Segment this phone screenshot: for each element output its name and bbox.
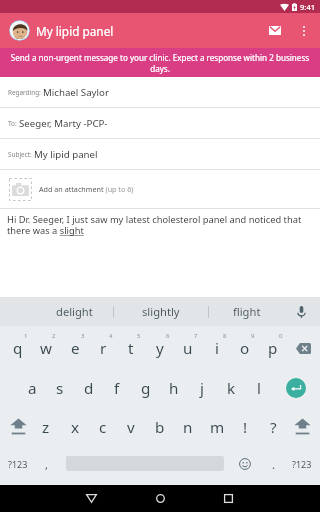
staticText: 8 <box>223 332 227 340</box>
staticText: 9 <box>251 332 255 340</box>
staticText: i <box>215 338 219 359</box>
button[interactable]: e <box>61 328 89 368</box>
staticText: delight <box>56 304 93 319</box>
button[interactable]: slightly <box>117 297 205 326</box>
staticText: ?123 <box>8 458 28 470</box>
button[interactable]: . <box>261 445 285 483</box>
button[interactable]: p <box>259 328 287 368</box>
staticText: q <box>13 338 23 359</box>
button[interactable]: Shift <box>3 407 33 447</box>
button[interactable]: a <box>18 368 46 408</box>
button[interactable]: b <box>146 407 174 447</box>
staticText: My lipid panel <box>36 23 114 39</box>
staticText: Michael Saylor <box>43 86 109 99</box>
staticText: o <box>240 338 250 359</box>
button[interactable]: m <box>203 407 231 447</box>
staticText: slightly <box>142 304 180 319</box>
button[interactable]: h <box>160 368 188 408</box>
button[interactable]: q <box>4 328 32 368</box>
button[interactable]: Back <box>74 485 108 512</box>
button[interactable]: Add an attachment (up to 6) <box>0 170 320 209</box>
staticText: 1 <box>24 332 28 340</box>
button[interactable]: Subject: <box>0 139 320 170</box>
button[interactable]: To: <box>0 108 320 139</box>
staticText: Add an attachment (up to 6) <box>39 184 134 194</box>
staticText: u <box>183 338 193 359</box>
button[interactable]: ?123 <box>1 445 35 483</box>
button[interactable]: ?123 <box>285 445 319 483</box>
button[interactable]: w <box>32 328 60 368</box>
button[interactable]: t <box>117 328 145 368</box>
button[interactable]: n <box>174 407 202 447</box>
button[interactable]: j <box>188 368 216 408</box>
button[interactable]: v <box>117 407 145 447</box>
staticText: Subject: <box>8 150 32 159</box>
staticText: 6 <box>166 332 170 340</box>
button[interactable]: Regarding: <box>0 77 320 108</box>
button[interactable]: z <box>32 407 60 447</box>
staticText: g <box>141 378 151 399</box>
button[interactable]: Emoji <box>232 445 258 483</box>
staticText: t <box>128 338 134 359</box>
button[interactable]: ! <box>231 407 259 447</box>
staticText: k <box>227 378 236 399</box>
staticText: w <box>40 338 52 359</box>
staticText: 0 <box>279 332 283 340</box>
staticText: p <box>268 338 278 359</box>
button[interactable]: Recents <box>211 485 245 512</box>
staticText: x <box>71 417 80 438</box>
button[interactable]: Messages <box>260 13 290 48</box>
staticText: ? <box>270 417 277 438</box>
button[interactable]: o <box>231 328 259 368</box>
staticText: 5 <box>137 332 141 340</box>
staticText: v <box>127 417 135 438</box>
staticText: d <box>84 378 94 399</box>
button[interactable]: Shift <box>287 407 317 447</box>
staticText: l <box>257 378 261 399</box>
staticText: h <box>169 378 179 399</box>
button[interactable]: c <box>89 407 117 447</box>
staticText: e <box>71 338 80 359</box>
button[interactable]: Hi Dr. Seeger, I just saw my latest chol… <box>7 213 310 237</box>
button[interactable]: s <box>46 368 74 408</box>
staticText: j <box>200 378 204 399</box>
staticText: 2 <box>52 332 56 340</box>
button[interactable]: i <box>203 328 231 368</box>
button[interactable]: flight <box>203 297 291 326</box>
button[interactable]: f <box>103 368 131 408</box>
staticText: My lipid panel <box>34 148 98 161</box>
button[interactable]: , <box>34 445 58 483</box>
staticText: Hi Dr. Seeger, I just saw my latest chol… <box>7 213 310 237</box>
button[interactable]: l <box>245 368 273 408</box>
staticText: , <box>45 457 48 472</box>
button[interactable]: x <box>61 407 89 447</box>
staticText: ! <box>243 417 248 438</box>
staticText: y <box>156 338 164 359</box>
staticText: c <box>99 417 107 438</box>
button[interactable]: Voice input <box>287 297 315 326</box>
button[interactable]: d <box>75 368 103 408</box>
button[interactable]: r <box>89 328 117 368</box>
button[interactable]: y <box>146 328 174 368</box>
staticText: 9:41 <box>300 2 316 12</box>
staticText: n <box>183 417 193 438</box>
button[interactable]: k <box>217 368 245 408</box>
staticText: b <box>155 417 165 438</box>
staticText: Seeger, Marty -PCP- <box>19 117 108 130</box>
staticText: r <box>100 338 107 359</box>
staticText: 7 <box>194 332 198 340</box>
staticText: f <box>114 378 120 399</box>
button[interactable]: delight <box>30 297 118 326</box>
button[interactable]: Enter <box>274 368 318 408</box>
button[interactable]: g <box>132 368 160 408</box>
staticText: 3 <box>81 332 85 340</box>
button[interactable]: Backspace <box>285 328 320 368</box>
button[interactable]: More options <box>290 13 318 48</box>
staticText: flight <box>233 304 261 319</box>
button[interactable]: Home <box>143 485 177 512</box>
staticText: . <box>272 457 275 472</box>
button[interactable]: ? <box>259 407 287 447</box>
staticText: Regarding: <box>8 88 41 97</box>
button[interactable]: u <box>174 328 202 368</box>
